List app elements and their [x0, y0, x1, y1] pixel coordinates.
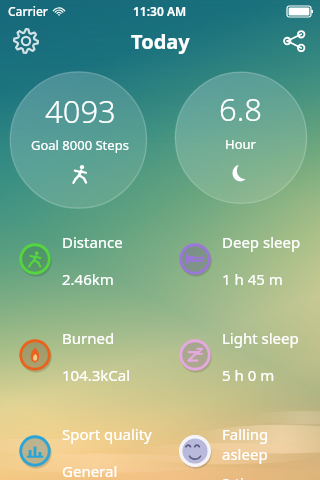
- button[interactable]: Burned: [18, 328, 160, 418]
- staticText: 11:30 AM: [133, 3, 187, 19]
- staticText: Light sleep: [222, 328, 299, 348]
- button[interactable]: Settings: [9, 24, 43, 58]
- staticText: 2.46km: [62, 269, 114, 289]
- staticText: 2 times: [222, 473, 274, 480]
- staticText: Hour: [225, 135, 256, 153]
- staticText: asleep: [222, 444, 268, 464]
- button[interactable]: Sport quality: [18, 424, 160, 480]
- staticText: 5 h 0 m: [222, 365, 275, 385]
- staticText: 104.3kCal: [62, 365, 131, 385]
- staticText: 4093: [45, 90, 116, 132]
- button[interactable]: Deep sleep: [178, 232, 320, 322]
- button[interactable]: Light sleep: [178, 328, 320, 418]
- button[interactable]: 4093: [0, 64, 160, 216]
- staticText: 6.8: [219, 88, 262, 130]
- staticText: Deep sleep: [222, 232, 301, 252]
- button[interactable]: Distance: [18, 232, 160, 322]
- staticText: Falling: [222, 424, 269, 444]
- button[interactable]: Falling: [178, 424, 320, 480]
- staticText: 1 h 45 m: [222, 269, 283, 289]
- staticText: Today: [131, 28, 190, 55]
- staticText: Burned: [62, 328, 115, 348]
- staticText: Sport quality: [62, 424, 152, 444]
- staticText: Goal 8000 Steps: [31, 136, 129, 154]
- staticText: Carrier: [8, 3, 48, 19]
- button[interactable]: 6.8: [160, 64, 320, 216]
- button[interactable]: Share: [277, 24, 311, 58]
- staticText: General: [62, 461, 118, 480]
- staticText: Distance: [62, 232, 123, 252]
